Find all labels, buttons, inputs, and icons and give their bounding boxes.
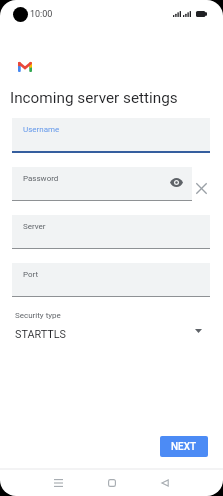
staticText: Incoming server settings [10, 89, 178, 107]
button[interactable]: Home [100, 471, 123, 494]
staticText: Security type [15, 311, 61, 320]
button[interactable]: Clear password [196, 183, 207, 194]
staticText: NEXT [171, 441, 197, 453]
button[interactable]: Security type [0, 305, 223, 345]
staticText: Port [23, 270, 39, 279]
button[interactable]: Recent apps [47, 471, 70, 494]
button[interactable]: Back [153, 471, 176, 494]
staticText: 10:00 [30, 9, 53, 20]
staticText: Password [23, 174, 59, 183]
staticText: STARTTLS [15, 328, 66, 341]
staticText: Username [23, 125, 60, 134]
button[interactable]: Port [12, 263, 210, 298]
button[interactable]: Server [12, 215, 210, 250]
button[interactable]: Show password [170, 177, 183, 188]
button[interactable]: Username [12, 118, 210, 153]
staticText: Server [23, 222, 46, 231]
button[interactable]: Password [12, 167, 192, 202]
button[interactable]: NEXT [160, 436, 208, 457]
